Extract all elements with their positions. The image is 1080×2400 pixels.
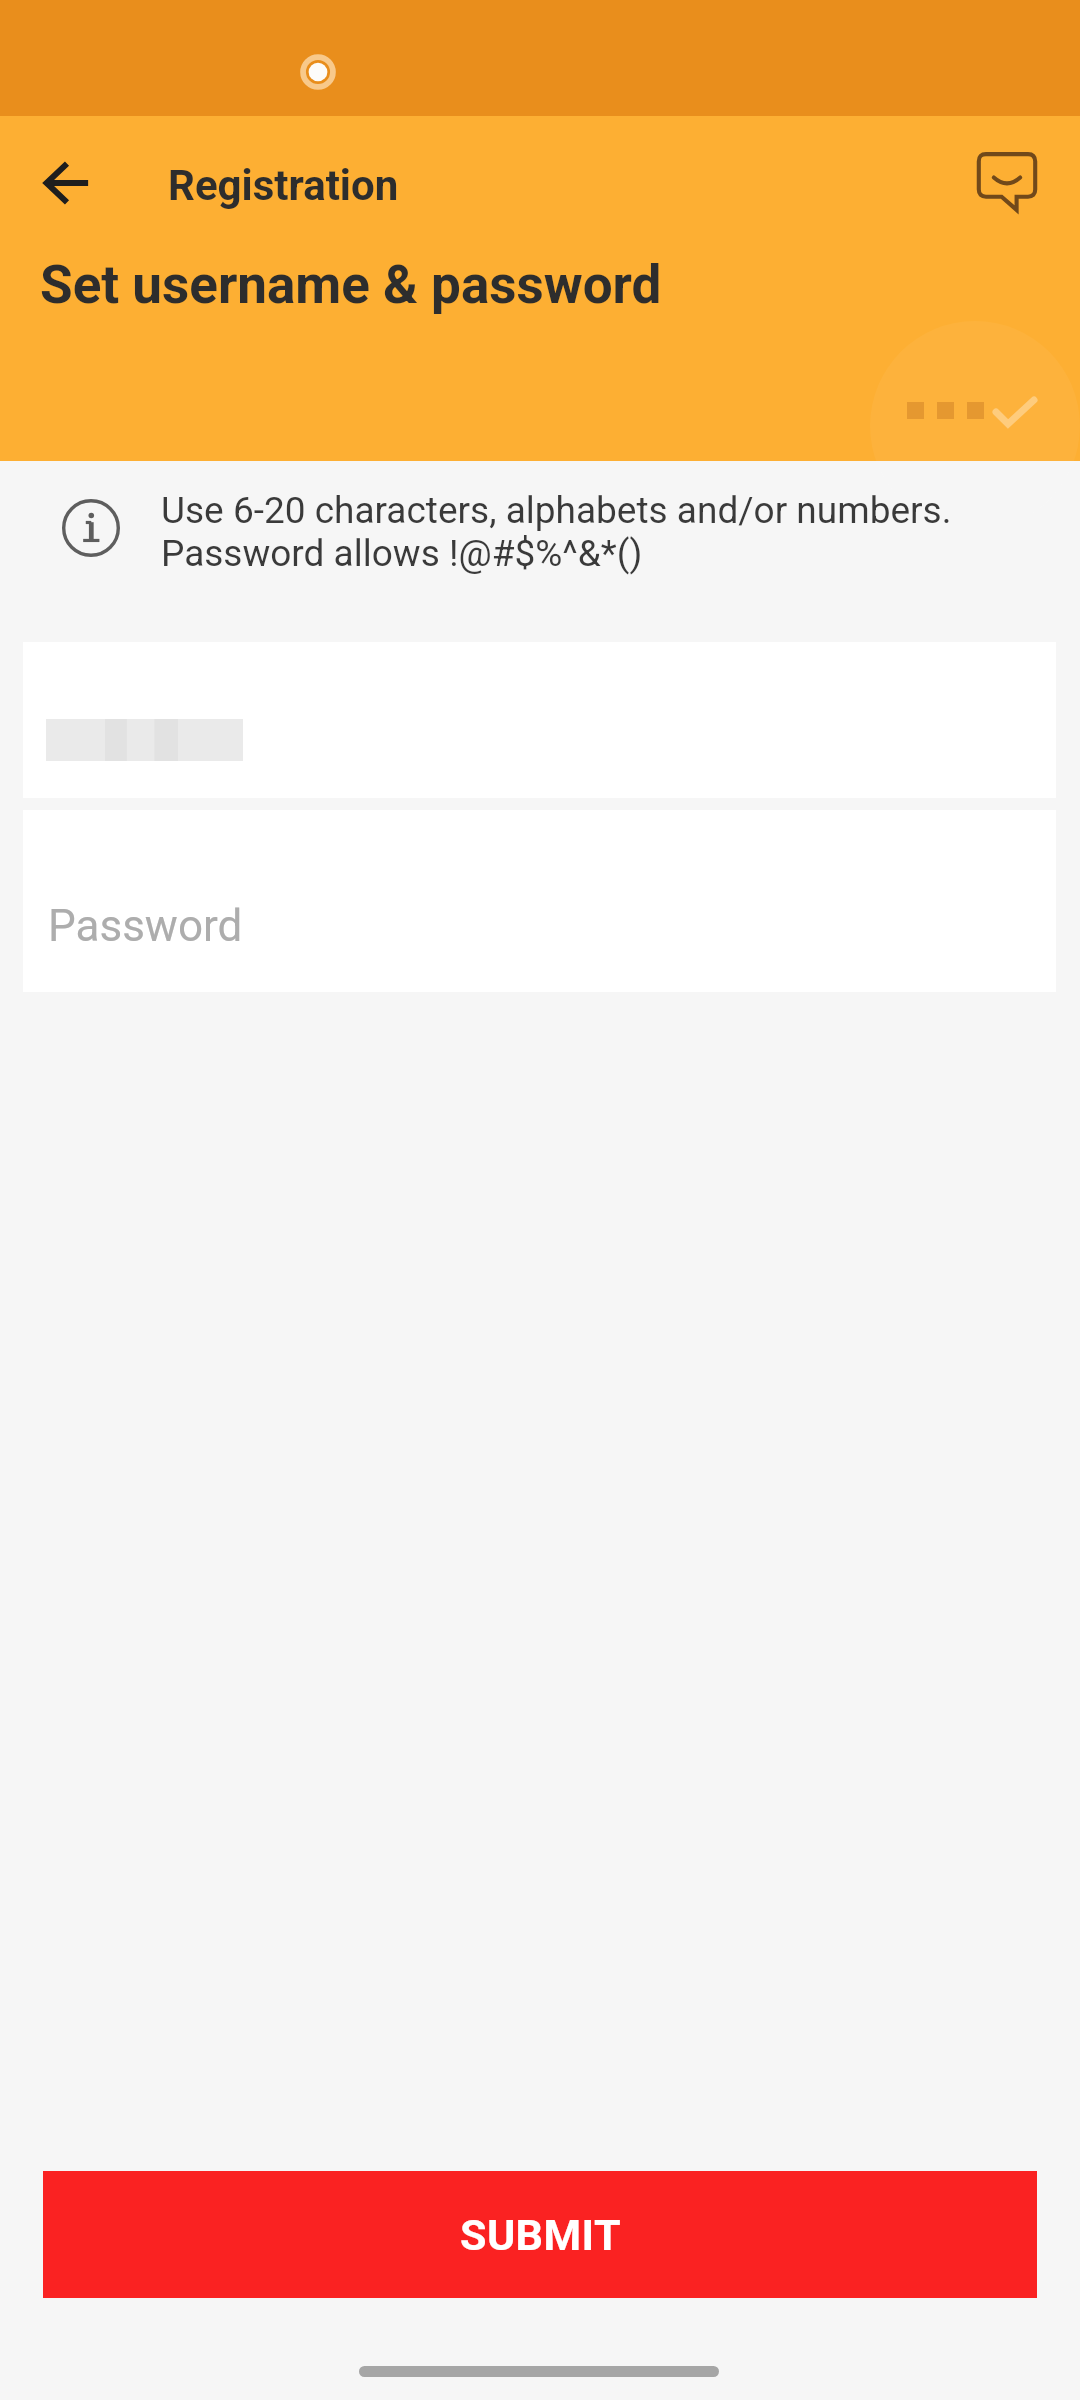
button[interactable]: SUBMIT <box>43 2171 1037 2298</box>
button[interactable]: Chat support <box>948 124 1066 242</box>
button[interactable]: Back <box>9 126 125 242</box>
button[interactable] <box>23 642 1056 798</box>
staticText: Use 6-20 characters, alphabets and/or nu… <box>161 489 952 575</box>
button[interactable]: Password <box>23 810 1056 992</box>
staticText: Registration <box>168 161 399 210</box>
staticText: SUBMIT <box>460 2210 621 2260</box>
staticText: Password <box>48 900 243 952</box>
staticText: Set username & password <box>40 254 662 316</box>
